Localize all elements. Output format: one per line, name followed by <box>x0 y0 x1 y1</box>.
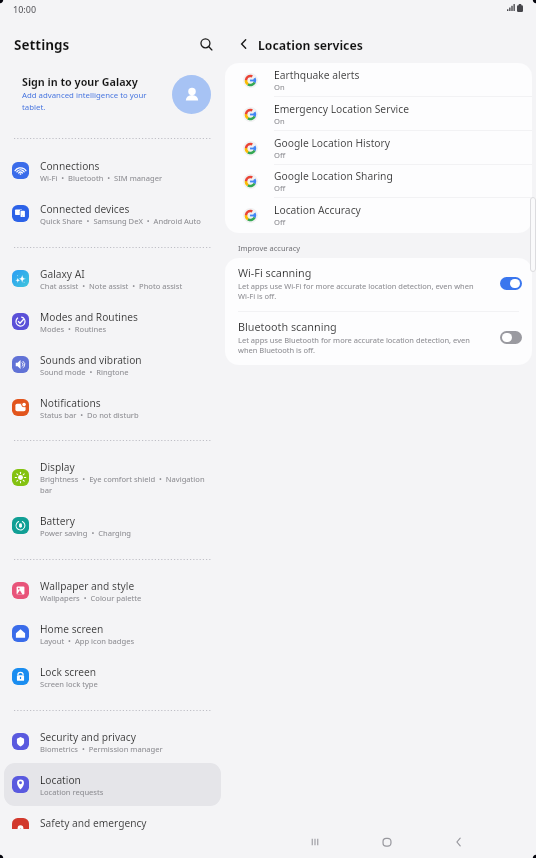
button[interactable]: Toggle off <box>500 331 522 344</box>
button[interactable]: Sign in to your Galaxy <box>4 66 221 124</box>
button[interactable]: Connected devices <box>4 192 221 235</box>
staticText: Add advanced intelligence to your tablet… <box>22 90 153 112</box>
staticText: Wallpaper and style <box>40 579 135 593</box>
button[interactable]: Location Accuracy <box>225 198 532 232</box>
staticText: Location services <box>258 37 363 54</box>
staticText: Battery <box>40 514 75 528</box>
button[interactable]: Home <box>377 832 397 852</box>
staticText: Emergency Location Service <box>274 102 410 116</box>
button[interactable]: Galaxy AI <box>4 257 221 300</box>
button[interactable]: Toggle on <box>500 277 522 290</box>
button[interactable]: Back <box>233 33 255 55</box>
button[interactable]: Home screen <box>4 612 221 655</box>
staticText: Sign in to your Galaxy <box>22 75 138 90</box>
button[interactable]: Bluetooth scanning <box>225 312 532 365</box>
staticText: Wi-Fi scanning <box>238 265 312 280</box>
button[interactable]: Wi-Fi scanning <box>225 258 532 312</box>
staticText: Let apps use Wi-Fi for more accurate loc… <box>238 281 482 301</box>
staticText: Connected devices <box>40 202 130 216</box>
button[interactable]: Lock screen <box>4 655 221 698</box>
button[interactable]: Search <box>196 34 217 55</box>
button[interactable]: Display <box>4 451 221 504</box>
staticText: Modes and Routines <box>40 310 138 324</box>
button[interactable]: Google Location History <box>225 131 532 165</box>
staticText: Earthquake alerts <box>274 68 360 82</box>
staticText: Brightness • Eye comfort shield • Naviga… <box>40 474 214 495</box>
staticText: Sound mode • Ringtone <box>40 367 214 377</box>
staticText: Wi-Fi • Bluetooth • SIM manager <box>40 173 214 183</box>
staticText: Google Location History <box>274 136 391 150</box>
staticText: Google Location Sharing <box>274 169 393 183</box>
button[interactable]: Google Location Sharing <box>225 164 532 198</box>
staticText: Improve accuracy <box>238 243 301 253</box>
staticText: Screen lock type <box>40 679 214 689</box>
staticText: 10:00 <box>13 3 37 15</box>
staticText: Status bar • Do not disturb <box>40 410 214 420</box>
button[interactable]: Notifications <box>4 386 221 429</box>
staticText: Home screen <box>40 622 104 636</box>
staticText: Settings <box>14 36 70 54</box>
button[interactable]: Location <box>4 763 221 806</box>
staticText: Off <box>274 183 286 193</box>
staticText: Off <box>274 150 286 160</box>
staticText: Safety and emergency <box>40 816 147 830</box>
staticText: Bluetooth scanning <box>238 319 337 334</box>
button[interactable]: Recents <box>305 832 325 852</box>
staticText: Lock screen <box>40 665 97 679</box>
staticText: Display <box>40 460 75 474</box>
staticText: Connections <box>40 159 100 173</box>
button[interactable]: Security and privacy <box>4 720 221 763</box>
button[interactable]: Safety and emergency <box>4 801 221 844</box>
button[interactable]: Modes and Routines <box>4 300 221 343</box>
button[interactable]: Battery <box>4 504 221 547</box>
staticText: Let apps use Bluetooth for more accurate… <box>238 335 482 355</box>
staticText: Security and privacy <box>40 730 136 744</box>
staticText: Quick Share • Samsung DeX • Android Auto <box>40 216 214 226</box>
button[interactable]: Connections <box>4 149 221 192</box>
staticText: Power saving • Charging <box>40 528 214 538</box>
button[interactable]: Wallpaper and style <box>4 569 221 612</box>
staticText: Chat assist • Note assist • Photo assist <box>40 281 214 291</box>
button[interactable]: Sounds and vibration <box>4 343 221 386</box>
staticText: Location requests <box>40 787 214 797</box>
staticText: Location <box>40 773 81 787</box>
staticText: Modes • Routines <box>40 324 214 334</box>
staticText: Notifications <box>40 396 101 410</box>
staticText: On <box>274 82 285 92</box>
button[interactable]: Emergency Location Service <box>225 97 532 131</box>
staticText: Galaxy AI <box>40 267 85 281</box>
staticText: Sounds and vibration <box>40 353 142 367</box>
staticText: Layout • App icon badges <box>40 636 214 646</box>
staticText: Location Accuracy <box>274 203 361 217</box>
staticText: On <box>274 116 285 126</box>
button[interactable]: Back <box>449 832 469 852</box>
staticText: Off <box>274 217 286 227</box>
button[interactable]: Earthquake alerts <box>225 63 532 97</box>
staticText: Biometrics • Permission manager <box>40 744 214 754</box>
staticText: Wallpapers • Colour palette <box>40 593 214 603</box>
